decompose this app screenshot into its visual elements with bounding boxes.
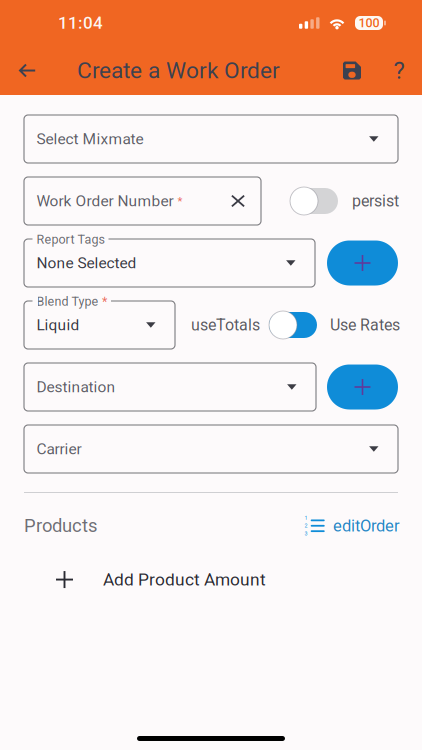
- staticText: Add Product Amount: [103, 569, 266, 590]
- staticText: 11:04: [58, 13, 103, 33]
- staticText: Blend Type: [36, 294, 98, 309]
- staticText: useTotals: [191, 316, 260, 334]
- staticText: Report Tags: [36, 232, 104, 247]
- staticText: 100: [358, 16, 379, 30]
- staticText: *: [177, 194, 182, 208]
- button[interactable]: Add: [327, 240, 398, 285]
- button[interactable]: Select Mixmate: [24, 115, 398, 163]
- button[interactable]: Destination: [24, 363, 316, 411]
- staticText: Destination: [36, 378, 115, 396]
- button[interactable]: Work Order Number: [24, 177, 261, 225]
- staticText: editOrder: [333, 516, 400, 535]
- staticText: Carrier: [36, 440, 81, 458]
- staticText: Products: [24, 515, 97, 537]
- staticText: Create a Work Order: [77, 57, 280, 84]
- staticText: 2: [304, 523, 307, 529]
- staticText: Work Order Number: [36, 192, 173, 210]
- staticText: *: [102, 294, 107, 309]
- button[interactable]: Use totals or rates: [269, 311, 317, 339]
- button[interactable]: Help: [377, 46, 421, 95]
- button[interactable]: None Selected: [24, 239, 315, 287]
- button[interactable]: Save: [330, 46, 374, 95]
- staticText: Use Rates: [330, 316, 400, 334]
- staticText: 1: [304, 515, 307, 521]
- staticText: ?: [393, 56, 404, 84]
- staticText: Select Mixmate: [36, 130, 143, 148]
- staticText: Liquid: [36, 316, 79, 334]
- button[interactable]: Add: [327, 364, 398, 409]
- button[interactable]: Carrier: [24, 425, 398, 473]
- button[interactable]: persist: [290, 187, 338, 215]
- staticText: None Selected: [36, 254, 136, 272]
- button[interactable]: 1: [304, 516, 400, 535]
- staticText: persist: [352, 192, 399, 210]
- staticText: 3: [304, 530, 307, 537]
- button[interactable]: Liquid: [24, 301, 175, 349]
- button[interactable]: Back: [0, 46, 56, 95]
- button[interactable]: Add Product Amount: [0, 567, 422, 593]
